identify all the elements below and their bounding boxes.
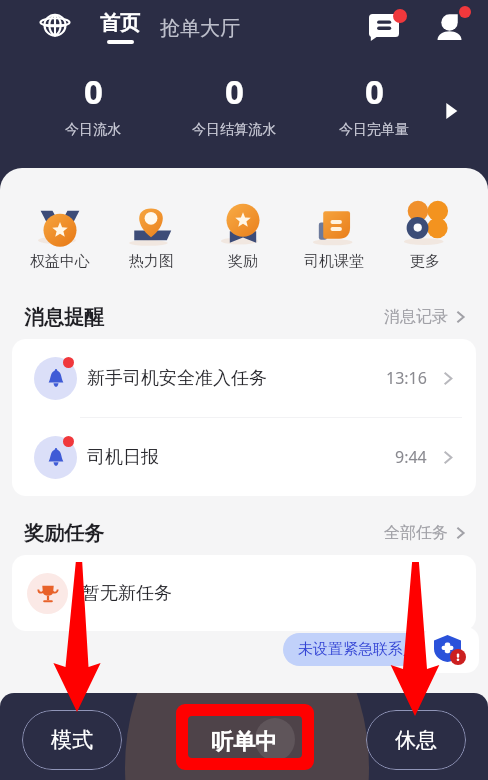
button[interactable]: 司机课堂: [290, 204, 378, 271]
staticText: 0: [84, 69, 103, 114]
staticText: 今日完单量: [339, 121, 409, 139]
staticText: 全部任务: [384, 523, 448, 543]
button[interactable]: 暂无新任务: [12, 555, 476, 631]
button[interactable]: Message history: [380, 302, 470, 332]
staticText: 首页: [100, 11, 140, 36]
staticText: 抢单大厅: [160, 16, 240, 41]
button[interactable]: 抢单大厅: [158, 13, 242, 44]
button[interactable]: 奖励: [199, 204, 287, 271]
button[interactable]: 未设置紧急联系人: [283, 633, 433, 666]
staticText: 消息提醒: [24, 305, 104, 330]
staticText: 0: [365, 69, 384, 114]
staticText: 今日流水: [65, 121, 121, 139]
staticText: 模式: [51, 727, 93, 753]
staticText: 新手司机安全准入任务: [87, 367, 267, 390]
staticText: 司机课堂: [304, 252, 364, 271]
staticText: 奖励任务: [24, 521, 104, 546]
button[interactable]: Profile: [431, 2, 473, 44]
button[interactable]: 司机日报: [12, 418, 476, 496]
staticText: 13:16: [386, 367, 427, 389]
staticText: 司机日报: [87, 446, 159, 469]
button[interactable]: 0: [164, 69, 304, 139]
button[interactable]: 新手司机安全准入任务: [12, 339, 476, 417]
button[interactable]: Messages: [363, 4, 405, 46]
button[interactable]: 0: [304, 69, 444, 139]
staticText: 消息记录: [384, 307, 448, 327]
button[interactable]: 模式: [22, 710, 122, 770]
staticText: 休息: [395, 727, 437, 753]
button[interactable]: Safety center: [423, 627, 479, 673]
button[interactable]: 权益中心: [16, 204, 104, 271]
staticText: 奖励: [228, 252, 258, 271]
button[interactable]: 热力图: [107, 204, 195, 271]
staticText: 热力图: [129, 252, 174, 271]
button[interactable]: 0: [23, 69, 163, 139]
staticText: 暂无新任务: [82, 582, 172, 605]
button[interactable]: Language: [40, 9, 70, 39]
staticText: 今日结算流水: [192, 121, 276, 139]
button[interactable]: 听单中: [129, 693, 359, 780]
staticText: 9:44: [395, 446, 427, 468]
staticText: 权益中心: [30, 252, 90, 271]
staticText: 未设置紧急联系人: [298, 640, 418, 659]
button[interactable]: 更多: [381, 204, 469, 271]
button[interactable]: More stats: [436, 96, 466, 126]
staticText: 更多: [410, 252, 440, 271]
button[interactable]: 休息: [366, 710, 466, 770]
staticText: 听单中: [211, 728, 277, 756]
staticText: 0: [225, 69, 244, 114]
button[interactable]: All tasks: [380, 518, 470, 548]
button[interactable]: 首页: [98, 11, 142, 44]
